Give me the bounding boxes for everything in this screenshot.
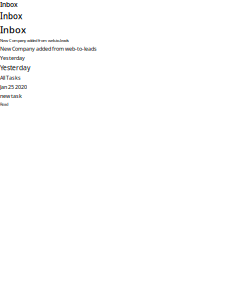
staticText: Inbox xyxy=(0,11,22,21)
staticText: All Tasks xyxy=(0,74,21,81)
staticText: Inbox xyxy=(0,23,26,36)
staticText: new task xyxy=(0,92,22,99)
staticText: New Company added from web-to-leads xyxy=(0,45,97,52)
staticText: New Company added from web-to-leads xyxy=(0,38,69,43)
staticText: Inbox xyxy=(0,0,18,9)
staticText: Yesterday xyxy=(0,54,25,61)
staticText: Yesterday xyxy=(0,63,30,72)
staticText: Read xyxy=(0,101,8,107)
staticText: Jan 25 2020 xyxy=(0,83,27,90)
